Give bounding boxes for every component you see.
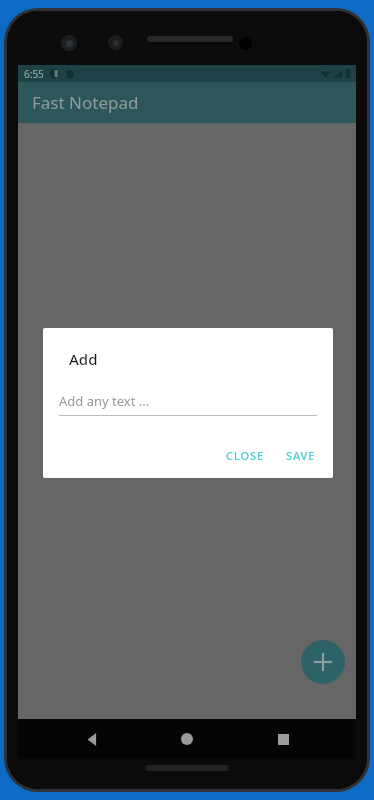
- staticText: Add: [69, 349, 98, 369]
- staticText: Fast Notepad: [32, 91, 139, 114]
- staticText: CLOSE: [226, 448, 264, 463]
- staticText: SAVE: [286, 448, 316, 463]
- button[interactable]: Recent apps: [261, 719, 305, 759]
- staticText: 6:55: [24, 67, 44, 81]
- button[interactable]: Add any text ...: [59, 392, 317, 416]
- button[interactable]: Home: [165, 719, 209, 759]
- button[interactable]: CLOSE: [217, 442, 273, 469]
- button[interactable]: SAVE: [277, 442, 325, 469]
- button[interactable]: Back: [70, 719, 114, 759]
- button[interactable]: Add note: [301, 640, 345, 684]
- staticText: Add any text ...: [59, 392, 150, 410]
